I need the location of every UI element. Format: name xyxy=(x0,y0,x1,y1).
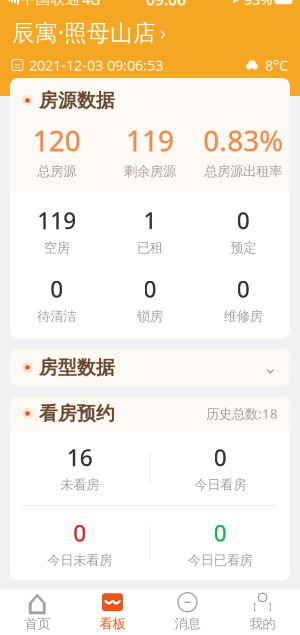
staticText: 中国联通 xyxy=(20,0,80,8)
staticText: 2021-12-03 09:06:53 xyxy=(29,55,163,75)
staticText: 93% xyxy=(244,0,272,9)
staticText: 锁房 xyxy=(137,308,163,324)
staticText: 总房源出租率 xyxy=(204,163,282,179)
staticText: 0 xyxy=(73,518,86,548)
staticText: 0 xyxy=(214,518,227,548)
staticText: › xyxy=(160,19,166,46)
staticText: 120 xyxy=(33,122,81,159)
button[interactable]: ⌂ xyxy=(0,589,75,635)
staticText: 我的 xyxy=(249,616,275,632)
staticText: 0 xyxy=(237,205,250,236)
staticText: 16 xyxy=(67,442,93,472)
staticText: 首页 xyxy=(24,616,50,632)
staticText: 0 xyxy=(143,274,156,304)
staticText: 0 xyxy=(50,274,63,304)
staticText: 119 xyxy=(126,122,174,159)
staticText: 4G xyxy=(82,0,101,9)
staticText: 09:06 xyxy=(146,0,186,10)
button[interactable]: 〰 xyxy=(75,589,150,635)
staticText: 房型数据 xyxy=(39,356,115,379)
staticText: 今日已看房 xyxy=(188,552,253,568)
staticText: 看板 xyxy=(99,616,125,632)
button[interactable]: 消息 xyxy=(150,589,225,635)
button[interactable]: 我的 xyxy=(225,589,300,635)
staticText: 辰寓·照母山店 xyxy=(12,17,156,47)
staticText: 总房源 xyxy=(37,163,76,179)
staticText: 已租 xyxy=(137,240,163,256)
staticText: 0 xyxy=(214,442,227,472)
staticText: ⌄ xyxy=(263,358,278,377)
staticText: 0.83% xyxy=(203,122,283,159)
button[interactable]: 房型数据 xyxy=(0,348,300,386)
staticText: 待清洁 xyxy=(37,308,76,324)
staticText: 〰 xyxy=(102,593,122,611)
button[interactable]: 辰寓·照母山店 xyxy=(0,17,300,47)
staticText: 预定 xyxy=(230,240,256,256)
staticText: 1 xyxy=(143,205,156,236)
staticText: 看房预约 xyxy=(39,402,115,425)
staticText: 空房 xyxy=(44,240,70,256)
staticText: 维修房 xyxy=(224,308,263,324)
staticText: 历史总数:18 xyxy=(206,405,278,422)
staticText: 今日未看房 xyxy=(47,552,112,568)
staticText: ⌂ xyxy=(26,582,48,622)
staticText: 房源数据 xyxy=(39,89,115,112)
staticText: ➤ xyxy=(231,0,241,6)
staticText: 今日看房 xyxy=(194,476,246,493)
staticText: 消息 xyxy=(174,616,200,632)
staticText: 剩余房源 xyxy=(124,163,176,179)
staticText: 8°C xyxy=(265,55,288,75)
staticText: 0 xyxy=(237,274,250,304)
staticText: 119 xyxy=(37,205,76,236)
staticText: 未看房 xyxy=(60,476,99,493)
